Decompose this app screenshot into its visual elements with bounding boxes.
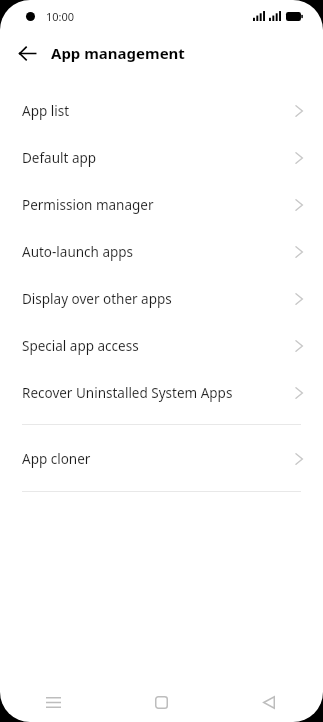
button[interactable]: Recent apps — [0, 682, 107, 722]
staticText: App list — [22, 102, 295, 120]
button[interactable]: App list — [0, 87, 323, 134]
staticText: 10:00 — [46, 9, 75, 24]
staticText: Display over other apps — [22, 290, 295, 308]
button[interactable]: Permission manager — [0, 181, 323, 228]
staticText: Special app access — [22, 337, 295, 355]
staticText: Default app — [22, 149, 295, 167]
button[interactable]: Default app — [0, 134, 323, 181]
button[interactable]: Display over other apps — [0, 275, 323, 322]
button[interactable]: Special app access — [0, 322, 323, 369]
staticText: App management — [51, 43, 185, 63]
button[interactable]: App cloner — [0, 435, 323, 482]
button[interactable]: Back — [12, 38, 42, 68]
button[interactable]: Home — [107, 682, 215, 722]
button[interactable]: Recover Uninstalled System Apps — [0, 369, 323, 416]
staticText: App cloner — [22, 450, 295, 468]
button[interactable]: Auto-launch apps — [0, 228, 323, 275]
button[interactable]: Back — [215, 682, 323, 722]
staticText: Permission manager — [22, 196, 295, 214]
staticText: Recover Uninstalled System Apps — [22, 384, 295, 402]
staticText: Auto-launch apps — [22, 243, 295, 261]
